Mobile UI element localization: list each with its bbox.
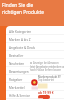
- button[interactable]: Neuheiten: [6, 59, 64, 67]
- staticText: Ratgeber: [9, 78, 23, 82]
- staticText: Marken A bis Z: [9, 38, 31, 42]
- staticText: Top bewertet: [38, 78, 55, 82]
- staticText: nach Hause liefern lassen: [30, 68, 62, 72]
- staticText: Markenprodukt XY: [38, 75, 61, 79]
- button[interactable]: Anzeige bei Amazon: [30, 61, 59, 65]
- button[interactable]: Bestseller: [6, 51, 64, 59]
- button[interactable]: Angebote & Deals: [6, 43, 64, 51]
- staticText: Jetzt Angebote entdecken und bequem: [30, 65, 64, 69]
- staticText: Merkzettel: [9, 86, 25, 90]
- staticText: Hilfe & Service: [9, 94, 30, 98]
- staticText: richtigen Produkte: [2, 9, 44, 16]
- button[interactable]: Hilfe & Service: [6, 91, 64, 99]
- staticText: Jetzt entdecken: [38, 96, 50, 99]
- staticText: Anzeige bei Amazon: [33, 61, 59, 65]
- staticText: ab 19,99 €: [38, 91, 54, 95]
- staticText: Neuheiten: [9, 62, 25, 66]
- button[interactable]: Produktbild: [31, 79, 49, 91]
- staticText: Bestseller: [9, 54, 24, 58]
- staticText: Angebote & Deals: [9, 46, 36, 50]
- button[interactable]: Ratgeber: [6, 75, 64, 83]
- staticText: Bewertungen: [9, 70, 29, 74]
- staticText: Finden Sie die: [2, 2, 34, 9]
- button[interactable]: Jetzt entdecken: [38, 95, 50, 99]
- button[interactable]: Merkzettel: [6, 83, 64, 91]
- button[interactable]: Alle Kategorien: [6, 27, 64, 35]
- button[interactable]: Bewertungen: [6, 67, 64, 75]
- staticText: Alle Kategorien: [9, 30, 32, 34]
- button[interactable]: Marken A bis Z: [6, 35, 64, 43]
